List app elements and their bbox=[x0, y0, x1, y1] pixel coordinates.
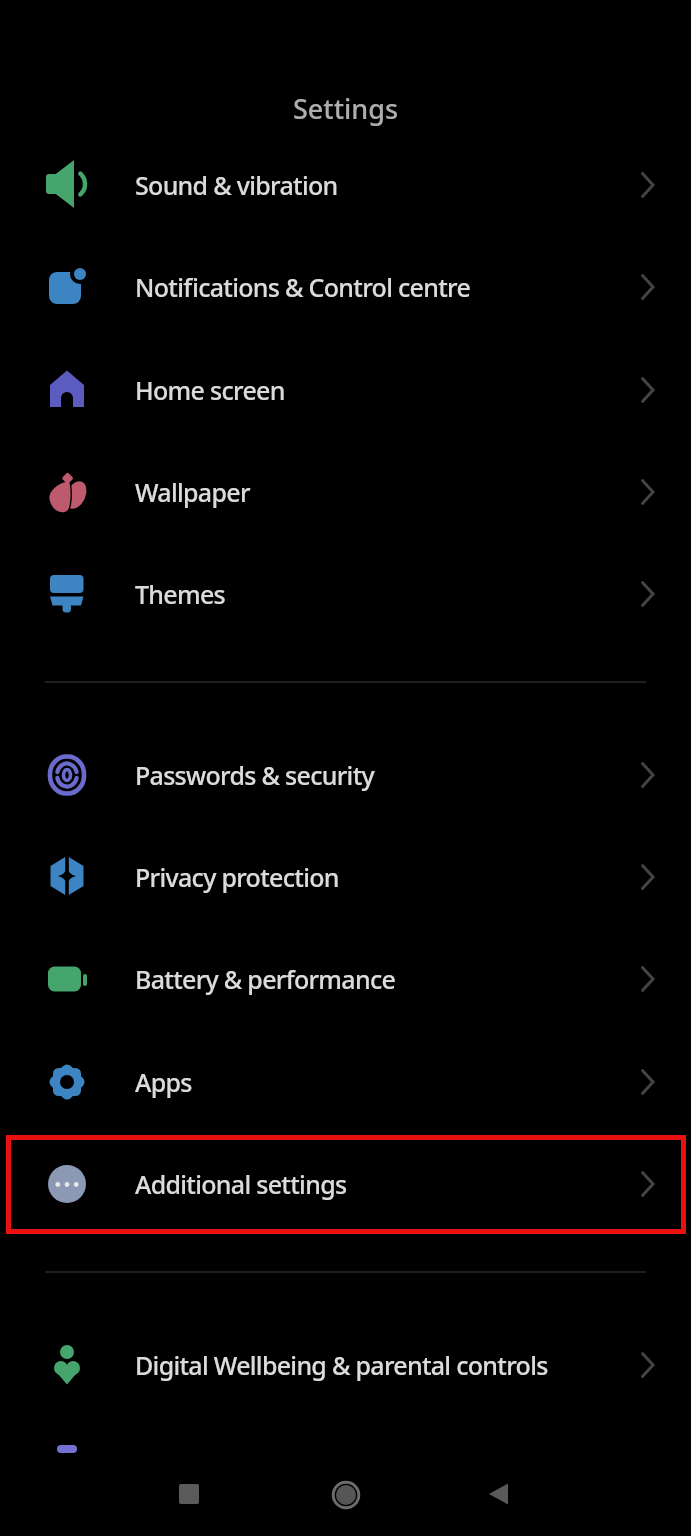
staticText: Wallpaper bbox=[135, 475, 250, 509]
button[interactable]: Notifications & Control centre bbox=[0, 236, 691, 338]
staticText: Sound & vibration bbox=[135, 168, 338, 202]
button[interactable]: Digital Wellbeing & parental controls bbox=[0, 1314, 691, 1416]
button[interactable]: Privacy protection bbox=[0, 826, 691, 928]
button[interactable] bbox=[149, 1454, 229, 1534]
button[interactable]: Themes bbox=[0, 543, 691, 645]
staticText: Settings bbox=[293, 90, 399, 126]
staticText: Home screen bbox=[135, 373, 285, 407]
button[interactable] bbox=[459, 1454, 539, 1534]
staticText: Apps bbox=[135, 1065, 192, 1099]
staticText: Battery & performance bbox=[135, 962, 396, 996]
button[interactable]: Wallpaper bbox=[0, 441, 691, 543]
button[interactable]: Passwords & security bbox=[0, 724, 691, 826]
staticText: Passwords & security bbox=[135, 758, 375, 792]
staticText: Digital Wellbeing & parental controls bbox=[135, 1348, 548, 1382]
button[interactable] bbox=[306, 1455, 386, 1535]
staticText: Themes bbox=[135, 577, 226, 611]
button[interactable]: Additional settings bbox=[0, 1133, 691, 1235]
button[interactable]: Sound & vibration bbox=[0, 134, 691, 236]
staticText: Privacy protection bbox=[135, 860, 339, 894]
button[interactable]: Apps bbox=[0, 1031, 691, 1133]
staticText: Notifications & Control centre bbox=[135, 270, 471, 304]
button[interactable]: Home screen bbox=[0, 339, 691, 441]
button[interactable]: Battery & performance bbox=[0, 928, 691, 1030]
staticText: Additional settings bbox=[135, 1167, 347, 1201]
